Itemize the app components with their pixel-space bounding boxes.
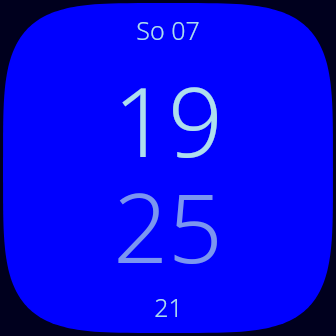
button[interactable]: Watch face — [0, 0, 336, 336]
staticText: So 07 — [136, 13, 200, 47]
button[interactable]: 21 — [154, 280, 183, 334]
button[interactable]: 19 — [113, 54, 223, 158]
button[interactable]: 25 — [113, 160, 223, 264]
staticText: 19 — [113, 54, 223, 158]
button[interactable]: So 07 — [136, 0, 200, 60]
staticText: 25 — [113, 160, 223, 264]
staticText: 21 — [154, 290, 183, 324]
